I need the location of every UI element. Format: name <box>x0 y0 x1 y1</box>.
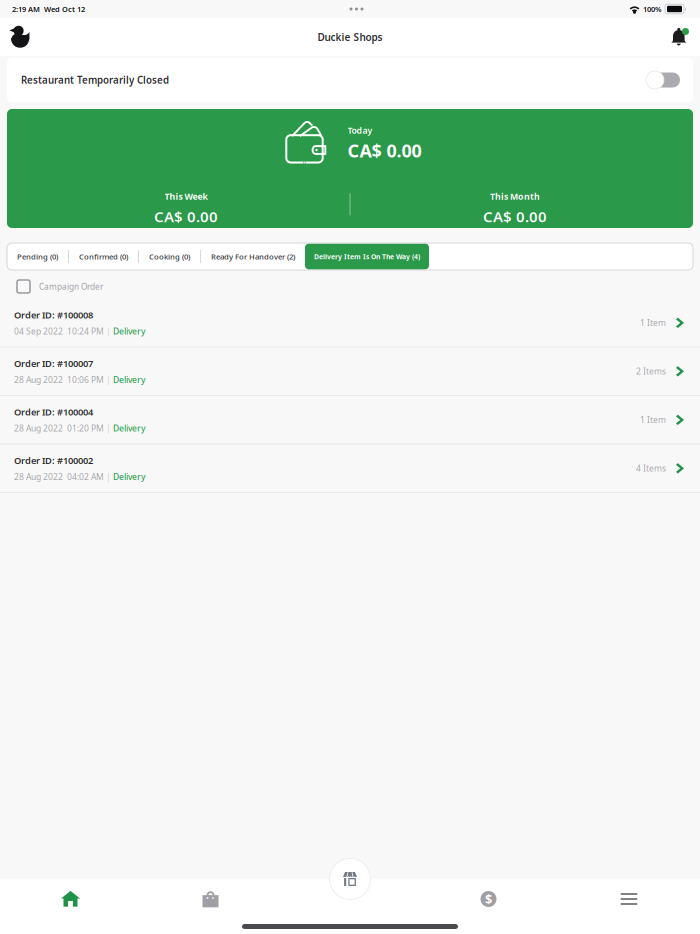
staticText: Delivery <box>113 374 146 385</box>
button[interactable]: Notifications <box>658 18 700 56</box>
staticText: 2 Items <box>636 365 666 377</box>
staticText: This Week <box>164 190 207 202</box>
staticText: 2:19 AM <box>12 4 40 14</box>
button[interactable]: Restaurant Temporarily Closed toggle <box>646 71 680 89</box>
staticText: 04 Sep 2022 10:24 PM <box>14 325 104 337</box>
staticText: Order ID: #100008 <box>14 309 93 321</box>
staticText: 28 Aug 2022 04:02 AM <box>14 471 104 482</box>
button[interactable]: Order ID: #100008 <box>0 299 700 347</box>
staticText: Delivery <box>113 471 146 482</box>
button[interactable]: Cooking (0) <box>139 244 200 269</box>
staticText: 1 Item <box>640 317 666 328</box>
button[interactable]: Home <box>0 879 141 919</box>
staticText: This Month <box>490 190 540 202</box>
staticText: CA$ 0.00 <box>483 206 547 227</box>
staticText: 28 Aug 2022 10:06 PM <box>14 374 104 385</box>
staticText: Delivery <box>113 422 146 434</box>
staticText: Pending (0) <box>17 251 58 262</box>
button[interactable]: Order ID: #100007 <box>0 347 700 396</box>
staticText: 28 Aug 2022 01:20 PM <box>14 422 104 434</box>
staticText: | <box>104 374 113 385</box>
button[interactable]: Pending (0) <box>7 244 68 269</box>
staticText: Delivery <box>113 325 146 337</box>
staticText: Order ID: #100004 <box>14 406 93 418</box>
staticText: Duckie Shops <box>317 30 382 44</box>
staticText: CA$ 0.00 <box>154 206 218 227</box>
button[interactable]: Shop <box>328 857 372 901</box>
staticText: Campaign Order <box>39 281 103 292</box>
staticText: Wed Oct 12 <box>40 4 85 14</box>
staticText: Order ID: #100007 <box>14 357 93 370</box>
button[interactable]: Ready For Handover (2) <box>201 244 305 269</box>
staticText: $ <box>485 890 492 908</box>
staticText: Order ID: #100002 <box>14 454 93 467</box>
button[interactable]: Duckie Shops <box>0 18 39 56</box>
button[interactable]: Orders <box>141 879 280 919</box>
button[interactable]: Campaign Order <box>0 274 700 299</box>
button[interactable]: Earnings <box>419 879 558 919</box>
button[interactable]: Confirmed (0) <box>69 244 138 269</box>
button[interactable]: Delivery Item Is On The Way (4) <box>305 243 429 269</box>
staticText: Delivery Item Is On The Way (4) <box>314 252 420 261</box>
staticText: | <box>104 471 113 482</box>
button[interactable]: More <box>558 879 700 919</box>
staticText: | <box>104 325 113 337</box>
button[interactable]: Order ID: #100004 <box>0 396 700 444</box>
staticText: | <box>104 422 113 434</box>
button[interactable]: Order ID: #100002 <box>0 444 700 493</box>
staticText: CA$ 0.00 <box>347 138 421 163</box>
staticText: Today <box>347 124 372 136</box>
staticText: 100% <box>641 4 662 14</box>
staticText: Ready For Handover (2) <box>211 251 295 262</box>
staticText: Restaurant Temporarily Closed <box>21 73 169 87</box>
staticText: Confirmed (0) <box>79 251 128 262</box>
staticText: Cooking (0) <box>149 251 190 262</box>
staticText: 4 Items <box>636 462 666 474</box>
staticText: 1 Item <box>640 414 666 425</box>
